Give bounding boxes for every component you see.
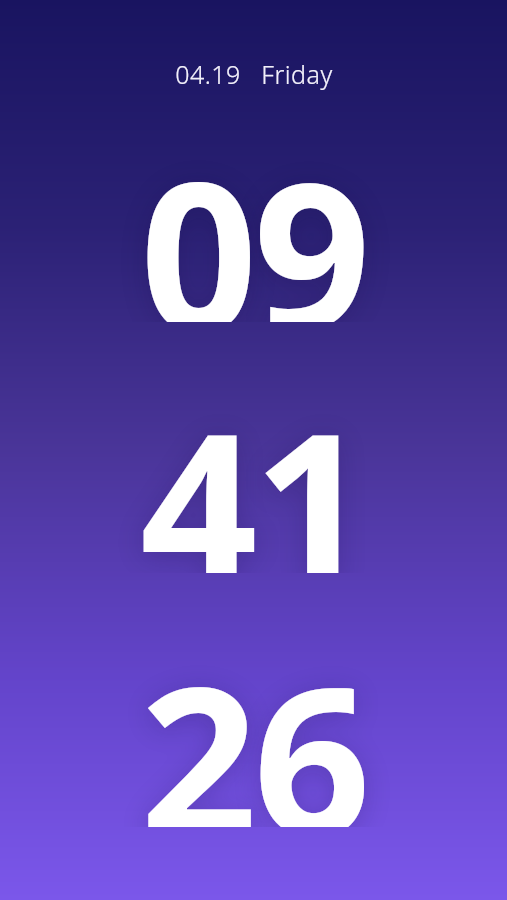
button[interactable]: Hours 09 xyxy=(0,112,507,322)
button[interactable]: Seconds 26 xyxy=(0,617,507,827)
button[interactable]: 04.19 xyxy=(0,0,507,900)
button[interactable]: Minutes 41 xyxy=(0,363,507,573)
staticText: 04.19 xyxy=(175,57,241,91)
staticText: 41 xyxy=(0,363,507,573)
button[interactable]: 04.19 xyxy=(0,57,507,91)
staticText: Friday xyxy=(261,57,333,91)
staticText: 26 xyxy=(0,617,507,827)
staticText: 09 xyxy=(0,112,507,322)
